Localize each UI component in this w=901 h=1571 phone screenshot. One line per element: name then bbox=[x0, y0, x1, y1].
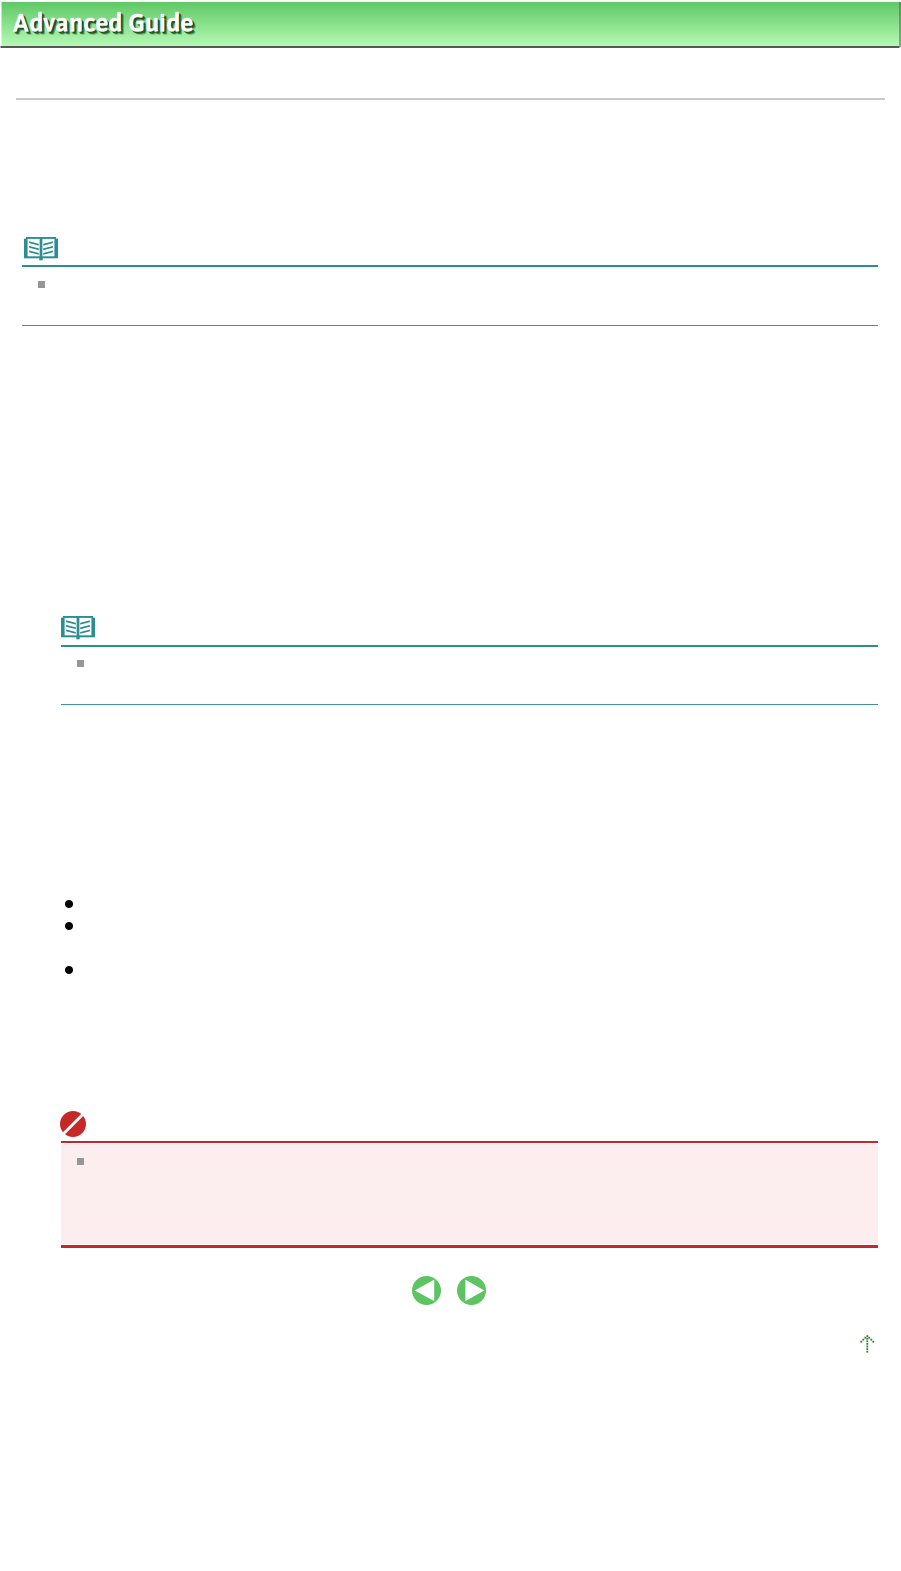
staticText: Advanced Guide bbox=[14, 9, 195, 38]
staticText: Advanced Guide bbox=[15, 10, 196, 39]
button[interactable]: Previous page bbox=[412, 1276, 441, 1305]
button[interactable]: Page top bbox=[861, 1335, 874, 1351]
button[interactable]: Next page bbox=[457, 1276, 486, 1305]
staticText: Advanced Guide bbox=[16, 11, 197, 40]
staticText: Advanced Guide bbox=[13, 8, 194, 37]
